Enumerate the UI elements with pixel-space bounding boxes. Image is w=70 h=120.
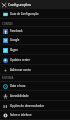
staticText: Guia de Configuração [10,12,39,16]
button[interactable]: Acessibilidade [0,91,70,101]
staticText: Updates center [10,58,31,62]
staticText: CONTAS [2,22,13,26]
staticText: Google [10,38,20,42]
button[interactable]: Updates center [0,55,70,65]
staticText: Adicionar conta [10,68,31,72]
button[interactable]: Guia de Configuração [0,9,70,19]
button[interactable]: Skype [0,45,70,55]
button[interactable]: Adicionar conta [0,65,70,75]
staticText: Configurações [8,2,31,7]
button[interactable]: Data e hora [0,81,70,91]
button[interactable]: Configurações [0,0,70,9]
staticText: Skype [10,48,18,52]
staticText: Facebook [10,29,23,33]
button[interactable]: Google [0,35,70,45]
staticText: Sobre o telefone [10,113,32,117]
staticText: Data e hora [10,84,26,88]
button[interactable]: Opções do desenvolvedor [0,101,70,111]
button[interactable]: Facebook [0,26,70,36]
staticText: SISTEMA [2,76,14,80]
button[interactable]: Sobre o telefone [0,110,70,120]
staticText: Acessibilidade [10,94,29,98]
staticText: Opções do desenvolvedor [10,104,45,108]
